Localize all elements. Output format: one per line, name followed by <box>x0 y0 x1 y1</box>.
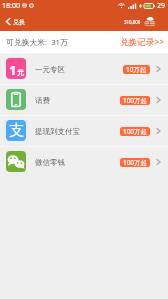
button[interactable]: 310,000 <box>124 15 156 28</box>
staticText: 100万起 <box>123 158 147 167</box>
staticText: 1 <box>9 61 17 79</box>
staticText: 100万起 <box>123 127 147 136</box>
staticText: 支 <box>9 121 24 140</box>
button[interactable]: 话费 <box>0 85 168 115</box>
staticText: 兑换 <box>13 18 25 26</box>
staticText: 29 <box>157 1 166 11</box>
staticText: 一元专区 <box>35 65 65 74</box>
staticText: 10万起 <box>126 65 147 74</box>
staticText: 兑换记录>> <box>120 36 165 48</box>
button[interactable]: 兑换记录>> <box>120 33 165 51</box>
staticText: 话费 <box>35 96 50 105</box>
other: Rice balance <box>143 16 156 27</box>
staticText: 可兑换大米: 31万 <box>6 37 68 48</box>
button[interactable]: 支 <box>0 116 168 146</box>
staticText: 100万起 <box>123 96 147 105</box>
button[interactable]: Back <box>3 15 27 28</box>
button[interactable]: 1 <box>0 54 168 84</box>
staticText: 元 <box>17 68 24 77</box>
staticText: 微信零钱 <box>35 158 65 167</box>
staticText: 18:00 <box>2 1 20 11</box>
staticText: 提现到支付宝 <box>35 127 80 136</box>
staticText: 310,000 <box>124 19 141 25</box>
button[interactable]: 微信零钱 <box>0 147 168 177</box>
